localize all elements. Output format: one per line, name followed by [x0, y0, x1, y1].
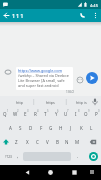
button[interactable]: S [13, 124, 27, 132]
button[interactable]: X [20, 138, 34, 146]
button[interactable] [89, 138, 97, 146]
button[interactable] [4, 68, 12, 76]
button[interactable] [78, 11, 87, 20]
staticText: /webhp – Shared via Deeboe [18, 73, 69, 78]
staticText: N [65, 139, 69, 145]
button[interactable]: ?123 [1, 153, 15, 161]
staticText: Y [55, 111, 58, 117]
button[interactable]: http [13, 98, 27, 106]
staticText: 4:45 [90, 3, 98, 8]
staticText: F [40, 125, 43, 131]
staticText: 8 [78, 109, 80, 113]
staticText: M [75, 139, 80, 145]
staticText: T [44, 111, 47, 117]
button[interactable]: O [79, 110, 93, 118]
staticText: S [19, 125, 22, 131]
button[interactable]: Y [49, 110, 63, 118]
staticText: 9 [88, 109, 90, 113]
staticText: Z [15, 139, 18, 145]
button[interactable]: E [18, 110, 32, 118]
button[interactable]: L [84, 124, 98, 132]
button[interactable]: T [38, 110, 52, 118]
button[interactable]: P [89, 110, 101, 118]
staticText: 6 [57, 109, 59, 113]
staticText: K [80, 125, 83, 131]
button[interactable] [91, 11, 100, 20]
staticText: ?123 [5, 155, 12, 159]
button[interactable] [88, 168, 96, 176]
button[interactable] [70, 168, 79, 177]
button[interactable]: M [70, 138, 84, 146]
staticText: R [34, 111, 37, 117]
button[interactable] [23, 168, 32, 177]
button[interactable]: N [60, 138, 74, 146]
staticText: Lite Browser [A small, safe [18, 78, 65, 83]
button[interactable]: I [69, 110, 83, 118]
staticText: I [75, 111, 77, 117]
staticText: , [17, 153, 19, 159]
button[interactable] [46, 168, 55, 177]
staticText: 4 [37, 109, 39, 113]
staticText: A [9, 125, 12, 131]
button[interactable]: V [40, 138, 54, 146]
button[interactable]: . [71, 152, 85, 160]
button[interactable]: Q [0, 110, 12, 118]
staticText: D [29, 125, 33, 131]
button[interactable]: U [59, 110, 73, 118]
staticText: V [46, 139, 49, 145]
staticText: 1 [7, 109, 9, 113]
staticText: J [70, 125, 72, 131]
staticText: 136/2 [66, 90, 74, 94]
button[interactable]: W [8, 110, 22, 118]
button[interactable] [76, 76, 84, 84]
button[interactable] [16, 67, 73, 90]
button[interactable]: C [30, 138, 44, 146]
staticText: H [59, 125, 63, 131]
staticText: http [16, 100, 24, 105]
button[interactable] [86, 72, 98, 84]
button[interactable]: Z [9, 138, 23, 146]
staticText: B [56, 139, 59, 145]
button[interactable]: http is [74, 98, 88, 106]
staticText: E [24, 111, 27, 117]
staticText: W [13, 111, 18, 117]
button[interactable]: K [74, 124, 88, 132]
button[interactable] [2, 11, 11, 20]
staticText: . [77, 153, 79, 159]
staticText: X [26, 139, 29, 145]
staticText: C [36, 139, 39, 145]
button[interactable]: https [43, 98, 57, 106]
staticText: 3 [27, 109, 29, 113]
staticText: U [64, 111, 68, 117]
staticText: and super fast android [18, 83, 59, 88]
button[interactable] [2, 138, 10, 146]
button[interactable]: J [64, 124, 78, 132]
staticText: https://www.google.com [18, 68, 62, 73]
button[interactable]: D [24, 124, 38, 132]
button[interactable]: R [28, 110, 42, 118]
button[interactable] [89, 152, 98, 161]
staticText: O [84, 111, 88, 117]
staticText: 2 [17, 109, 19, 113]
button[interactable]: , [11, 152, 25, 160]
button[interactable]: B [50, 138, 64, 146]
staticText: Q [3, 111, 7, 117]
staticText: http is [76, 100, 87, 105]
button[interactable]: F [34, 124, 48, 132]
button[interactable]: H [54, 124, 68, 132]
staticText: G [49, 125, 53, 131]
staticText: 0 [98, 109, 100, 113]
staticText: 7 [67, 109, 69, 113]
button[interactable]: G [44, 124, 58, 132]
staticText: https [46, 100, 55, 105]
staticText: L [90, 125, 93, 131]
staticText: P [95, 111, 98, 117]
staticText: 5 [47, 109, 49, 113]
staticText: 111 [12, 12, 25, 20]
button[interactable]: A [3, 124, 17, 132]
